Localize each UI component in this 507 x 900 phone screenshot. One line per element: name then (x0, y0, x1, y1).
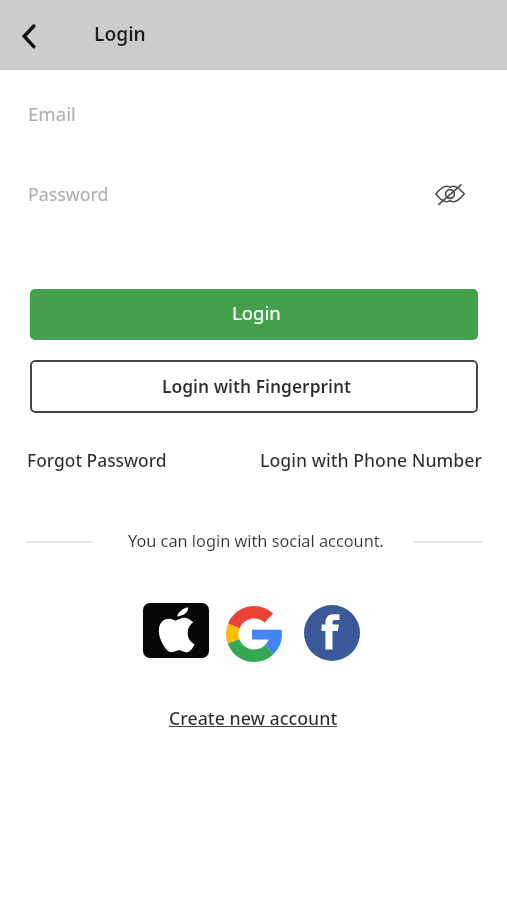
staticText: Forgot Password (27, 448, 167, 472)
button[interactable]: Login with Fingerprint (30, 360, 478, 413)
staticText: You can login with social account. (128, 530, 384, 552)
button[interactable]: Sign in with Apple (143, 603, 209, 658)
button[interactable]: Sign in with Facebook (304, 605, 360, 661)
button[interactable]: Login (30, 289, 478, 340)
button[interactable]: Login with Phone Number (260, 443, 482, 477)
button[interactable]: Create new account (169, 700, 339, 736)
staticText: Password (28, 182, 109, 206)
staticText: Login (94, 21, 146, 47)
staticText: Login with Phone Number (260, 448, 482, 472)
staticText: Create new account (169, 706, 338, 730)
button[interactable]: Forgot Password (27, 443, 167, 477)
staticText: Login with Fingerprint (162, 374, 352, 398)
staticText: Login (232, 300, 281, 325)
staticText: Email (28, 101, 76, 126)
button[interactable]: Back (5, 11, 53, 59)
button[interactable]: Show password (433, 177, 467, 211)
button[interactable]: Sign in with Google (226, 606, 282, 662)
